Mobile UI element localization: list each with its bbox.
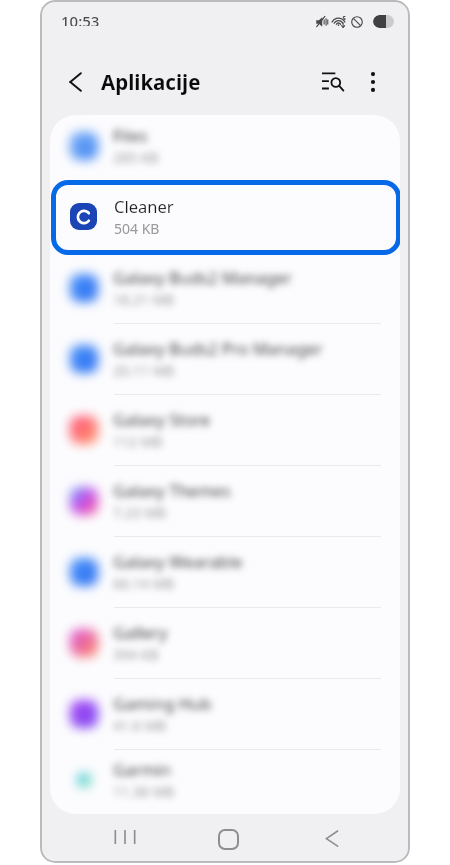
button[interactable]: Galaxy Themes [50, 465, 400, 536]
button[interactable]: Garmin [50, 749, 400, 809]
button[interactable]: Back [57, 63, 95, 101]
button[interactable]: Files [50, 115, 400, 181]
staticText: Files [113, 124, 148, 146]
button[interactable] [51, 180, 400, 255]
staticText: 18.21 MB [113, 290, 175, 309]
staticText: Galaxy Themes [113, 479, 231, 501]
staticText: Galaxy Buds2 Manager [113, 266, 292, 288]
button[interactable]: Galaxy Buds2 Manager [50, 252, 400, 323]
staticText: Galaxy Wearable [113, 550, 243, 572]
staticText: Gaming Hub [113, 692, 212, 714]
button[interactable]: Galaxy Buds2 Pro Manager [50, 323, 400, 394]
staticText: Galaxy Store [113, 408, 211, 430]
button[interactable]: Gallery [50, 607, 400, 678]
button[interactable]: Home [207, 818, 249, 860]
staticText: Gallery [113, 621, 168, 643]
staticText: 285 KB [113, 148, 159, 167]
button[interactable]: Galaxy Store [50, 394, 400, 465]
staticText: Galaxy Buds2 Pro Manager [113, 337, 323, 359]
staticText: 10:53 [61, 11, 100, 26]
staticText: 7.23 MB [113, 503, 167, 522]
button[interactable]: Back [311, 818, 353, 860]
button[interactable]: More options [353, 62, 393, 102]
staticText: 66.14 MB [113, 574, 175, 593]
button[interactable]: Sort and search [313, 62, 353, 102]
button[interactable]: Galaxy Wearable [50, 536, 400, 607]
staticText: 504 KB [114, 219, 160, 238]
staticText: Garmin [113, 758, 171, 780]
staticText: Cleaner [114, 195, 174, 217]
staticText: 394 KB [113, 645, 159, 664]
button[interactable]: Recents [104, 818, 146, 860]
staticText: 41.6 MB [113, 716, 167, 735]
staticText: 112 MB [113, 432, 163, 451]
staticText: Aplikacije [101, 68, 201, 96]
staticText: 20.11 MB [113, 361, 175, 380]
staticText: 11.38 MB [113, 782, 175, 801]
button[interactable]: Gaming Hub [50, 678, 400, 749]
